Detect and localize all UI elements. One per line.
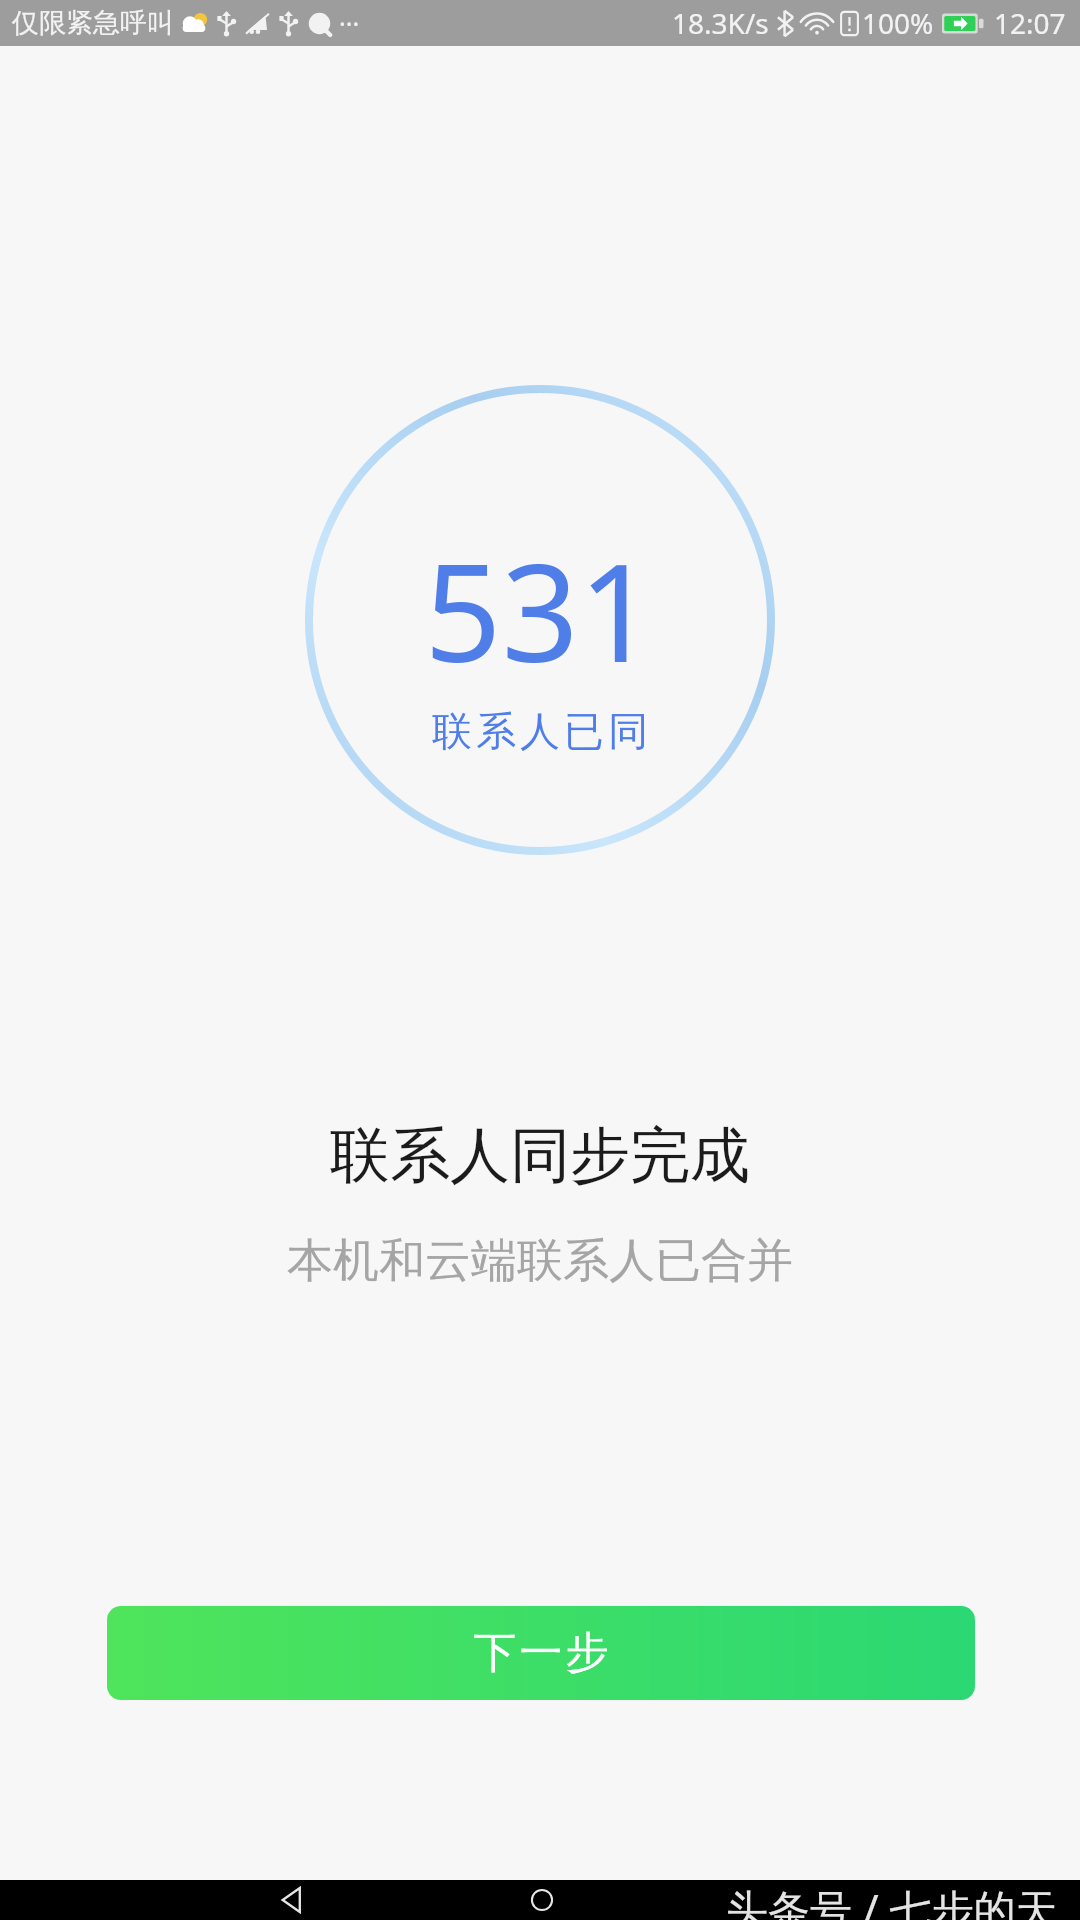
staticText: 531: [424, 518, 656, 702]
staticText: 18.3K/s: [672, 4, 769, 42]
staticText: 100%: [862, 4, 934, 42]
button[interactable]: Back: [262, 1880, 322, 1920]
staticText: 下一步: [472, 1626, 610, 1680]
staticText: 仅限紧急呼叫: [12, 6, 174, 40]
staticText: 联系人已同: [430, 706, 650, 756]
staticText: 12:07: [994, 4, 1066, 42]
button[interactable]: Home: [512, 1880, 572, 1920]
staticText: 本机和云端联系人已合并: [287, 1232, 793, 1290]
staticText: 联系人同步完成: [330, 1118, 750, 1194]
staticText: ···: [339, 6, 360, 40]
staticText: 头条号 / 七步的天: [726, 1880, 1058, 1920]
button[interactable]: 下一步: [107, 1606, 975, 1700]
